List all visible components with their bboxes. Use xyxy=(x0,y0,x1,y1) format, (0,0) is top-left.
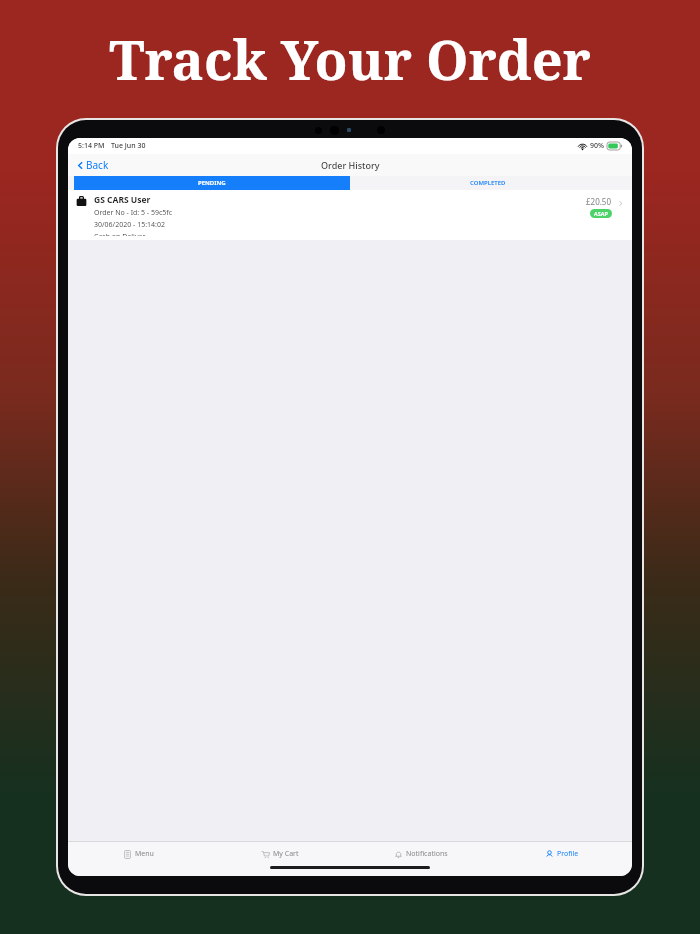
staticText: Menu xyxy=(135,849,154,859)
staticText: PENDING xyxy=(198,179,226,187)
button[interactable]: Profile xyxy=(491,842,632,866)
staticText: 30/06/2020 - 15:14:02 xyxy=(94,220,165,230)
button[interactable]: COMPLETED xyxy=(350,176,626,190)
staticText: Track Your Order xyxy=(109,22,591,96)
staticText: My Cart xyxy=(273,849,299,859)
staticText: COMPLETED xyxy=(470,179,506,187)
button[interactable]: GS CARS User xyxy=(68,190,632,240)
staticText: Notifications xyxy=(406,849,448,859)
staticText: Tue Jun 30 xyxy=(111,141,146,151)
staticText: £20.50 xyxy=(586,196,612,207)
button[interactable]: Notifications xyxy=(350,842,491,866)
staticText: 5:14 PM xyxy=(78,141,105,151)
staticText: Profile xyxy=(557,849,579,859)
staticText: ASAP xyxy=(594,210,608,217)
button[interactable]: My Cart xyxy=(209,842,350,866)
button[interactable]: PENDING xyxy=(74,176,350,190)
staticText: 90% xyxy=(590,141,604,151)
button[interactable]: Menu xyxy=(68,842,209,866)
button[interactable]: Back xyxy=(74,156,111,174)
staticText: Cash on Deliver xyxy=(94,232,146,236)
staticText: Order No - Id: 5 - 59c5fc xyxy=(94,208,173,218)
staticText: Order History xyxy=(321,159,380,171)
staticText: GS CARS User xyxy=(94,194,151,206)
staticText: Back xyxy=(86,158,109,172)
